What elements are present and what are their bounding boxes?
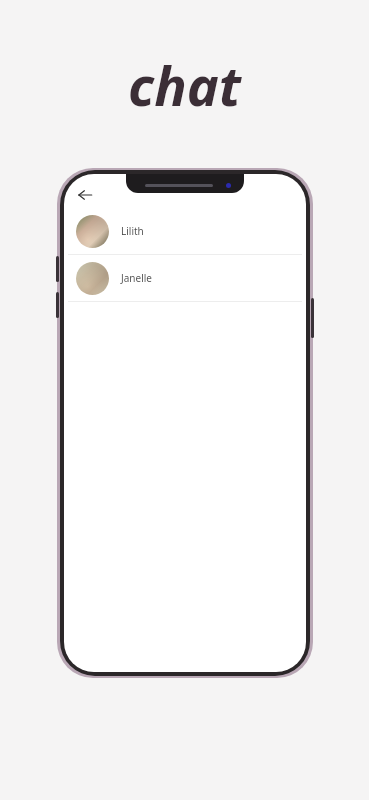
button[interactable]: Lilith <box>64 208 306 255</box>
button[interactable]: Janelle <box>64 255 306 302</box>
button[interactable]: Back <box>72 182 98 208</box>
staticText: chat <box>128 48 241 122</box>
staticText: Lilith <box>121 224 144 238</box>
staticText: Janelle <box>121 271 152 285</box>
